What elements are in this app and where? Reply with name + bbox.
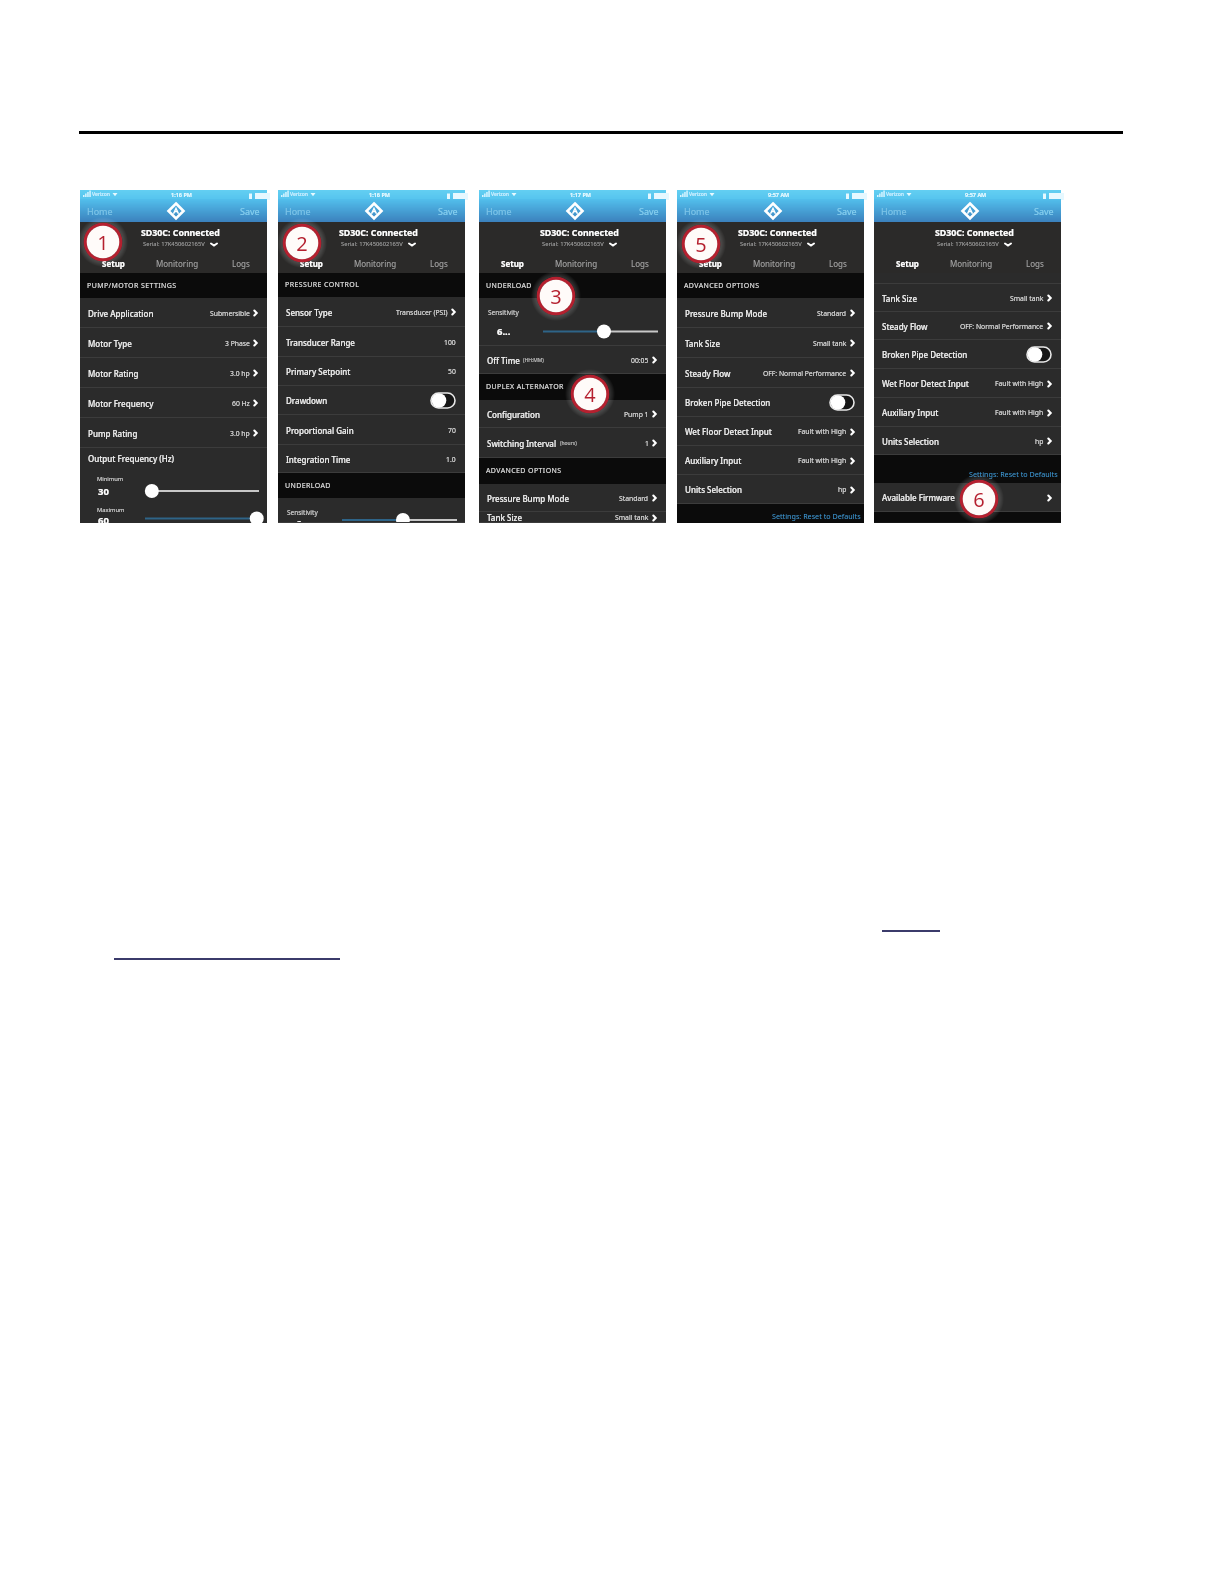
staticText: OFF: Normal Performance xyxy=(763,369,847,378)
button[interactable]: Home xyxy=(879,203,909,219)
button[interactable]: Configuration xyxy=(479,400,666,428)
staticText: 30 xyxy=(98,485,109,498)
staticText: 9:57 AM xyxy=(965,191,987,198)
staticText: DUPLEX ALTERNATOR xyxy=(486,382,564,392)
button[interactable]: Save xyxy=(835,203,859,219)
staticText: Units Selection xyxy=(882,436,939,447)
button[interactable]: Save xyxy=(637,203,661,219)
button[interactable]: Tank Size xyxy=(479,512,666,523)
button[interactable]: App logo xyxy=(765,203,781,219)
button[interactable]: Motor Type xyxy=(80,328,267,358)
staticText: (hours) xyxy=(560,440,577,447)
button[interactable]: Sensor Type xyxy=(278,297,465,327)
staticText: Home xyxy=(881,205,907,217)
button[interactable]: Available Firmware xyxy=(874,483,1061,512)
button[interactable]: Setup xyxy=(87,256,139,271)
button[interactable]: Drive Application xyxy=(80,298,267,328)
button[interactable]: Auxiliary Input xyxy=(874,398,1061,427)
staticText: 1:16 PM xyxy=(171,191,192,198)
button[interactable]: Monitoring xyxy=(941,256,1001,271)
staticText: 70 xyxy=(448,426,456,435)
button[interactable]: Pump Rating xyxy=(80,418,267,448)
button[interactable]: Logs xyxy=(413,256,465,271)
button[interactable]: Auxiliary Input xyxy=(677,446,864,475)
staticText: 6 xyxy=(973,486,985,513)
button[interactable]: Setup xyxy=(684,256,736,271)
staticText: Pressure Bump Mode xyxy=(685,308,768,319)
button[interactable]: Settings: Reset to Defaults xyxy=(874,455,1058,479)
staticText: Home xyxy=(87,205,113,217)
button[interactable]: Tank Size xyxy=(677,328,864,358)
button[interactable]: Logs xyxy=(812,256,864,271)
staticText: 2 xyxy=(296,230,308,257)
button[interactable]: Sensitivity xyxy=(278,498,465,523)
staticText: Transducer Range xyxy=(286,337,355,348)
staticText: OFF: Normal Performance xyxy=(960,322,1044,331)
button[interactable]: Sensitivity xyxy=(479,298,666,346)
button[interactable]: Off Time xyxy=(479,346,666,374)
button[interactable]: Integration Time xyxy=(278,445,465,473)
button[interactable]: Switching Interval xyxy=(479,428,666,458)
staticText: Motor Type xyxy=(88,338,132,349)
button[interactable]: Broken Pipe Detection xyxy=(677,388,864,417)
button[interactable]: Monitoring xyxy=(147,256,207,271)
staticText: Serial: 17K450602165V xyxy=(740,240,802,248)
button[interactable]: Monitoring xyxy=(345,256,405,271)
button[interactable]: App logo xyxy=(366,203,382,219)
button[interactable]: Primary Setpoint xyxy=(278,357,465,386)
button[interactable]: Transducer Range xyxy=(278,327,465,357)
staticText: 5 xyxy=(695,231,707,258)
button[interactable]: Setup xyxy=(486,256,538,271)
button[interactable]: App logo xyxy=(567,203,583,219)
staticText: Pump 1 xyxy=(624,410,649,419)
button[interactable]: Motor Rating xyxy=(80,358,267,388)
button[interactable]: Logs xyxy=(215,256,267,271)
button[interactable]: Home xyxy=(283,203,313,219)
button[interactable]: App logo xyxy=(962,203,978,219)
staticText: 100 xyxy=(444,338,456,347)
staticText: hp xyxy=(838,485,847,494)
button[interactable]: Proportional Gain xyxy=(278,415,465,445)
button[interactable]: Monitoring xyxy=(546,256,606,271)
button[interactable]: Pressure Bump Mode xyxy=(677,298,864,328)
staticText: Broken Pipe Detection xyxy=(882,349,968,360)
staticText: Drive Application xyxy=(88,308,154,319)
button[interactable]: Save xyxy=(1032,203,1056,219)
button[interactable]: Setup xyxy=(285,256,337,271)
button[interactable]: App logo xyxy=(168,203,184,219)
button[interactable]: Wet Floor Detect Input xyxy=(677,417,864,446)
button[interactable]: Motor Frequency xyxy=(80,388,267,418)
button[interactable]: Home xyxy=(484,203,514,219)
button[interactable]: Broken Pipe Detection xyxy=(874,340,1061,369)
button[interactable]: Minimum xyxy=(80,468,267,499)
staticText: Motor Frequency xyxy=(88,398,154,409)
button[interactable]: Save xyxy=(238,203,262,219)
staticText: Save xyxy=(837,205,857,217)
staticText: Serial: 17K450602165V xyxy=(341,240,403,248)
button[interactable]: Home xyxy=(682,203,712,219)
staticText: Setup xyxy=(896,258,919,269)
staticText: 3 xyxy=(550,283,562,310)
staticText: Submersible xyxy=(210,309,250,318)
staticText: Verizon xyxy=(491,191,509,198)
staticText: 1:17 PM xyxy=(570,191,591,198)
button[interactable]: Units Selection xyxy=(677,475,864,504)
button[interactable]: Home xyxy=(85,203,115,219)
button[interactable]: Drawdown xyxy=(278,386,465,415)
button[interactable]: Logs xyxy=(614,256,666,271)
button[interactable]: Steady Flow xyxy=(874,312,1061,340)
button[interactable]: Tank Size xyxy=(874,284,1061,312)
staticText: Auxiliary Input xyxy=(882,407,939,418)
button[interactable]: Save xyxy=(436,203,460,219)
staticText: SD30C: Connected xyxy=(540,227,619,239)
button[interactable]: Units Selection xyxy=(874,427,1061,455)
button[interactable]: Wet Floor Detect Input xyxy=(874,369,1061,398)
button[interactable]: Logs xyxy=(1009,256,1061,271)
button[interactable]: Steady Flow xyxy=(677,358,864,388)
button[interactable]: Maximum xyxy=(80,499,267,523)
button[interactable]: Pressure Bump Mode xyxy=(479,484,666,512)
button[interactable]: Setup xyxy=(881,256,933,271)
staticText: 1:16 PM xyxy=(369,191,390,198)
button[interactable]: Settings: Reset to Defaults xyxy=(677,504,861,521)
button[interactable]: Monitoring xyxy=(744,256,804,271)
